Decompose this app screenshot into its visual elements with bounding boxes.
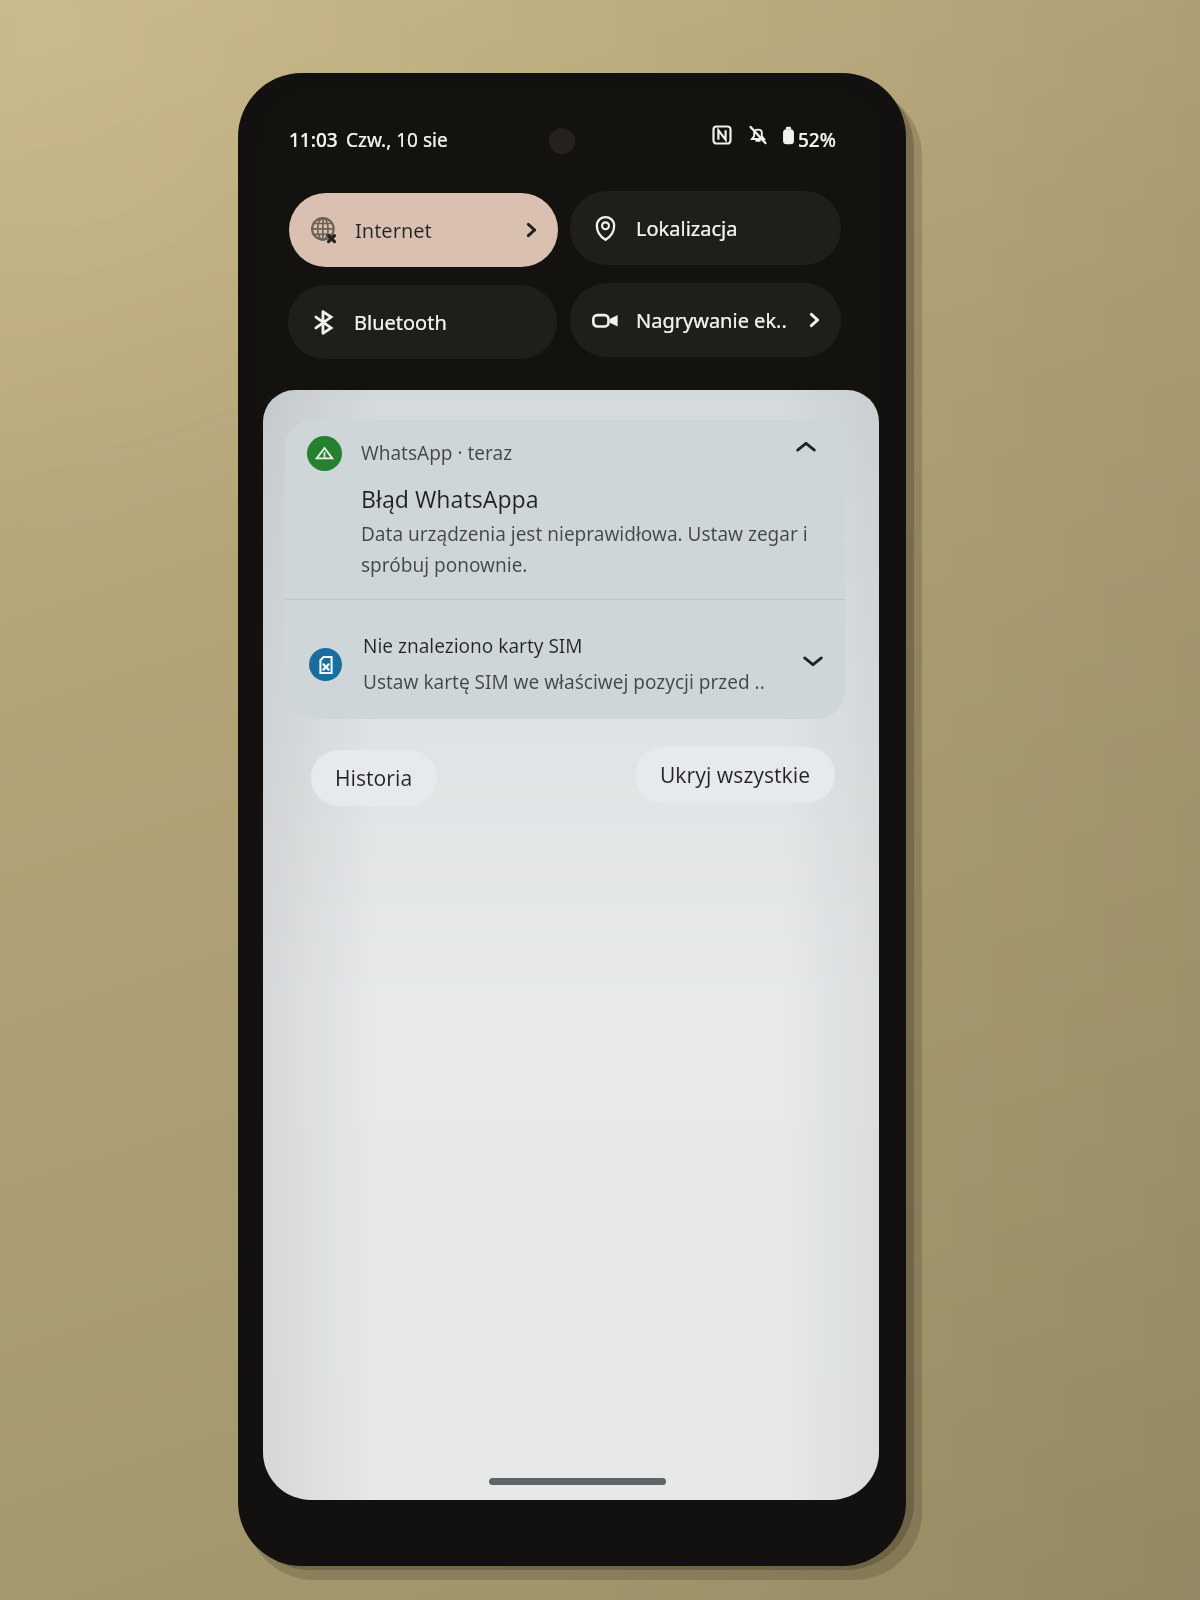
- staticText: Bluetooth: [354, 309, 447, 336]
- staticText: Czw., 10 sie: [346, 127, 448, 153]
- button[interactable]: Lokalizacja: [570, 191, 841, 265]
- button[interactable]: Bluetooth: [288, 285, 557, 359]
- button[interactable]: Internet: [289, 193, 558, 267]
- staticText: Lokalizacja: [636, 215, 738, 242]
- staticText: Nie znaleziono karty SIM: [363, 633, 583, 659]
- button[interactable]: Historia: [311, 750, 437, 806]
- staticText: 52%: [798, 127, 836, 153]
- button[interactable]: Collapse: [785, 426, 827, 468]
- staticText: Internet: [355, 217, 432, 244]
- staticText: WhatsApp · teraz: [361, 440, 513, 466]
- button[interactable]: Expand: [792, 640, 834, 682]
- button[interactable]: Nagrywanie ek..: [570, 283, 841, 357]
- staticText: 11:03: [289, 127, 338, 153]
- button[interactable]: Nie znaleziono karty SIM: [285, 600, 845, 719]
- staticText: Data urządzenia jest nieprawidłowa. Usta…: [361, 521, 811, 577]
- button[interactable]: WhatsApp · teraz: [285, 420, 845, 599]
- staticText: Ustaw kartę SIM we właściwej pozycji prz…: [363, 669, 765, 695]
- staticText: Historia: [335, 764, 413, 793]
- staticText: Ukryj wszystkie: [660, 761, 811, 790]
- button[interactable]: Ukryj wszystkie: [635, 747, 835, 803]
- staticText: Nagrywanie ek..: [636, 307, 787, 334]
- staticText: Błąd WhatsAppa: [361, 483, 539, 514]
